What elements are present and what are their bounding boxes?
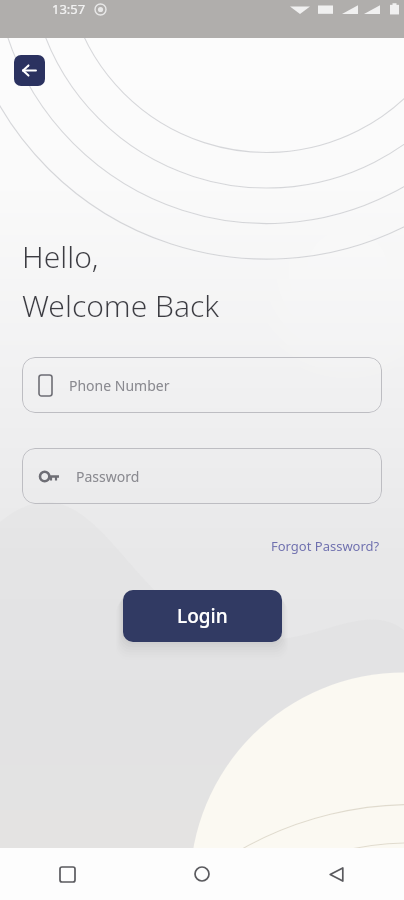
button[interactable]: Recents	[0, 848, 134, 900]
staticText: Login	[177, 603, 228, 629]
button[interactable]: Login	[123, 590, 282, 642]
button[interactable]: Back	[14, 55, 45, 86]
staticText: Phone Number	[69, 376, 170, 395]
staticText: Welcome Back	[22, 285, 220, 326]
staticText: Hello,	[22, 236, 99, 277]
button[interactable]: Password	[22, 448, 382, 504]
button[interactable]: Back	[269, 848, 404, 900]
staticText: 13:57	[52, 0, 86, 18]
staticText: Password	[76, 467, 140, 486]
staticText: Forgot Password?	[271, 537, 380, 555]
button[interactable]: Forgot Password?	[269, 534, 382, 558]
button[interactable]: Home	[134, 848, 269, 900]
button[interactable]: Phone Number	[22, 357, 382, 413]
